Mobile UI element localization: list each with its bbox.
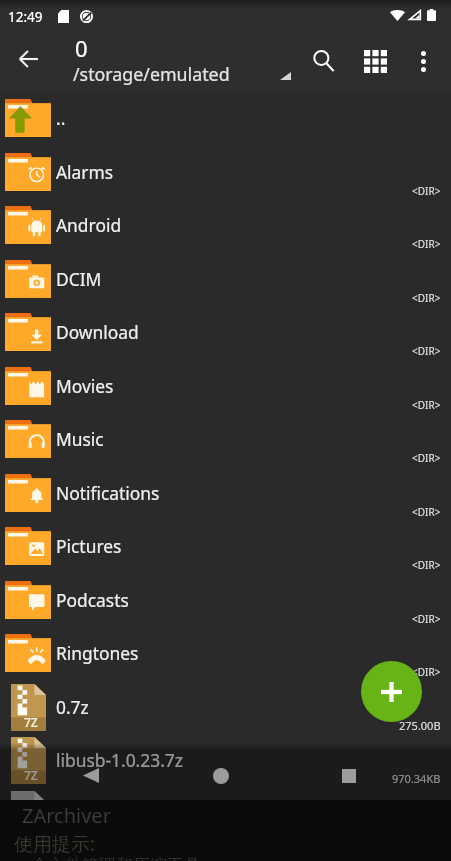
button[interactable]: Search <box>300 37 348 85</box>
staticText: 使用提示: <box>14 831 96 857</box>
staticText: Download <box>56 320 139 344</box>
button[interactable]: DCIM <box>0 252 451 306</box>
staticText: <DIR> <box>412 558 441 572</box>
staticText: Pictures <box>56 534 122 558</box>
button[interactable]: More options <box>399 37 447 85</box>
button[interactable]: .. <box>0 91 451 145</box>
button[interactable]: Back <box>66 751 115 800</box>
staticText: 0 <box>75 33 88 63</box>
staticText: 12:49 <box>8 8 43 26</box>
staticText: Podcasts <box>56 588 129 612</box>
button[interactable]: Android <box>0 198 451 252</box>
staticText: 275.00B <box>399 718 441 733</box>
staticText: ZArchiver <box>22 802 111 829</box>
button[interactable]: View mode <box>351 37 399 85</box>
button[interactable]: Notifications <box>0 466 451 520</box>
staticText: Ringtones <box>56 641 139 665</box>
staticText: Movies <box>56 374 114 398</box>
staticText: <DIR> <box>412 505 441 519</box>
button[interactable]: Back <box>4 35 52 83</box>
staticText: 0.7z <box>56 695 89 719</box>
button[interactable] <box>0 787 451 841</box>
staticText: libusb-1.0.23.7z <box>56 748 183 772</box>
staticText: Android <box>56 213 122 237</box>
button[interactable]: Add <box>361 661 422 722</box>
staticText: 7Z <box>24 767 38 783</box>
staticText: 970.34KB <box>392 771 441 786</box>
staticText: Alarms <box>56 160 114 184</box>
button[interactable]: Pictures <box>0 519 451 573</box>
button[interactable]: Movies <box>0 359 451 413</box>
staticText: Notifications <box>56 481 160 505</box>
button[interactable]: Download <box>0 305 451 359</box>
staticText: 7Z <box>24 714 38 730</box>
button[interactable]: Podcasts <box>0 573 451 627</box>
button[interactable]: Home <box>196 751 245 800</box>
staticText: <DIR> <box>412 237 441 251</box>
staticText: <DIR> <box>412 451 441 465</box>
staticText: Music <box>56 427 104 451</box>
button[interactable]: 7Z <box>0 680 451 734</box>
button[interactable]: Ringtones <box>0 626 451 680</box>
staticText: <DIR> <box>412 398 441 412</box>
staticText: <DIR> <box>412 344 441 358</box>
staticText: <DIR> <box>412 612 441 626</box>
staticText: <DIR> <box>412 184 441 198</box>
button[interactable]: Music <box>0 412 451 466</box>
staticText: /storage/emulated <box>73 62 230 86</box>
staticText: 一个文件管理和压缩工具 <box>14 855 201 861</box>
staticText: .. <box>56 106 66 130</box>
staticText: <DIR> <box>412 291 441 305</box>
staticText: <DIR> <box>412 665 441 679</box>
button[interactable]: 7Z <box>0 733 451 787</box>
button[interactable]: Alarms <box>0 145 451 199</box>
button[interactable]: Recent apps <box>324 751 373 800</box>
staticText: DCIM <box>56 267 102 291</box>
